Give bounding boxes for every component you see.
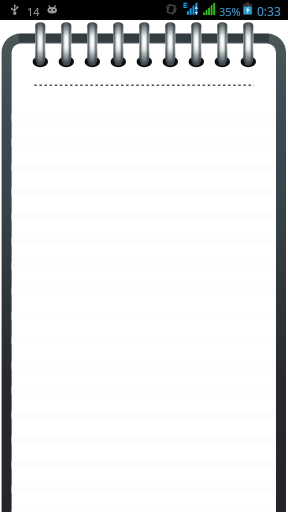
staticText: 35%: [219, 4, 241, 19]
staticText: 14: [27, 4, 40, 19]
staticText: 0:33: [257, 3, 281, 19]
